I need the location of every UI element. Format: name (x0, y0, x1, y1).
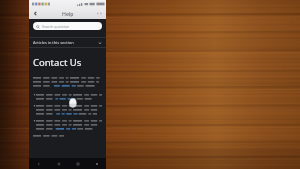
button[interactable]: Search question (33, 22, 102, 30)
button[interactable]: Assistant (87, 158, 106, 169)
staticText: Help (62, 10, 74, 17)
button[interactable]: Articles in this section (29, 38, 106, 47)
button[interactable]: Back (31, 9, 40, 18)
staticText: Contact Us (33, 56, 82, 69)
staticText: Search question (42, 24, 70, 29)
button[interactable]: Recents (68, 158, 87, 169)
button[interactable]: Home (49, 158, 68, 169)
staticText: Articles in this section (33, 40, 74, 45)
button[interactable]: Back (29, 158, 49, 169)
